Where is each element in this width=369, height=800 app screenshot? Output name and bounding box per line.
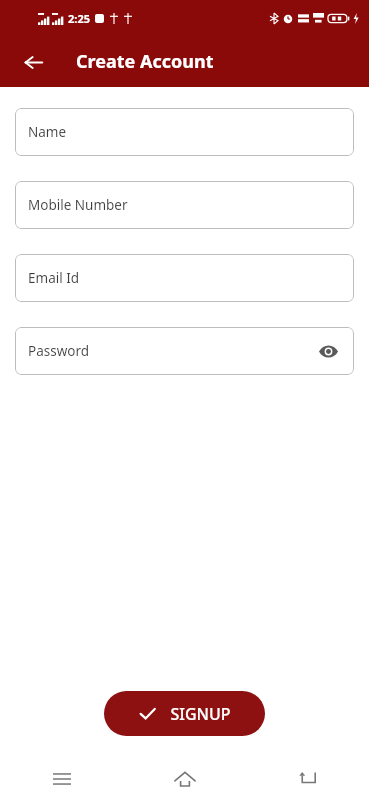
button[interactable]: SIGNUP <box>104 691 265 736</box>
button[interactable]: Back <box>12 41 54 83</box>
button[interactable]: Show password <box>315 338 341 364</box>
button[interactable]: Recent apps <box>0 758 123 800</box>
button[interactable]: Home <box>123 758 246 800</box>
staticText: 2:25 <box>68 11 90 26</box>
staticText: Mobile Number <box>28 196 128 214</box>
button[interactable]: Back <box>246 758 369 800</box>
button[interactable]: Name <box>15 108 354 156</box>
button[interactable]: Email Id <box>15 254 354 302</box>
staticText: Email Id <box>28 269 80 287</box>
staticText: SIGNUP <box>170 703 231 725</box>
staticText: Name <box>28 123 67 141</box>
staticText: Password <box>28 342 90 360</box>
button[interactable]: Mobile Number <box>15 181 354 229</box>
button[interactable]: Password <box>15 327 354 375</box>
staticText: Create Account <box>76 49 214 74</box>
